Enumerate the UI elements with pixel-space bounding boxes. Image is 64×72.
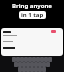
button[interactable]	[22, 67, 26, 72]
button[interactable]	[26, 67, 30, 72]
button[interactable]	[30, 62, 34, 67]
button[interactable]	[26, 62, 30, 67]
button[interactable]	[22, 62, 26, 67]
button[interactable]	[18, 62, 22, 67]
button[interactable]	[16, 57, 20, 62]
button[interactable]: in 1 tap	[21, 11, 44, 19]
button[interactable]	[18, 67, 22, 72]
button[interactable]	[40, 57, 44, 62]
button[interactable]	[36, 57, 40, 62]
button[interactable]	[42, 67, 46, 72]
button[interactable]	[42, 62, 46, 67]
button[interactable]	[46, 62, 50, 67]
button[interactable]	[12, 57, 16, 62]
staticText: in 1 tap	[21, 11, 44, 19]
button[interactable]	[38, 67, 42, 72]
button[interactable]	[14, 62, 18, 67]
button[interactable]	[32, 57, 36, 62]
button[interactable]	[38, 62, 42, 67]
button[interactable]	[44, 57, 48, 62]
button[interactable]	[24, 57, 28, 62]
button[interactable]	[34, 67, 38, 72]
button[interactable]	[20, 57, 24, 62]
staticText: Bring anyone	[0, 2, 64, 10]
button[interactable]	[30, 67, 34, 72]
button[interactable]	[48, 57, 52, 62]
button[interactable]	[28, 57, 32, 62]
button[interactable]	[34, 62, 38, 67]
